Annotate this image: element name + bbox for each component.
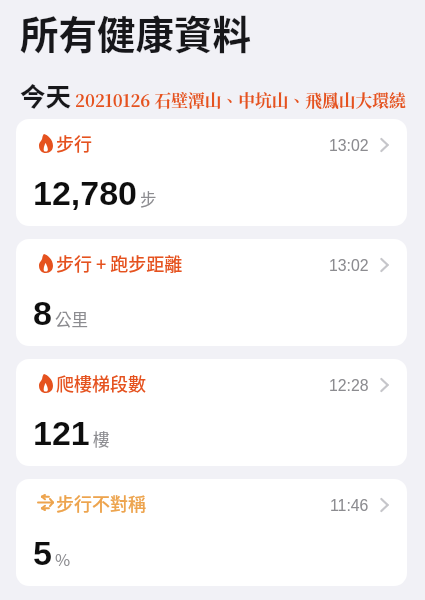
staticText: 20210126 石壁潭山、中坑山、飛鳳山大環繞 — [75, 88, 406, 112]
staticText: 8 — [33, 294, 52, 332]
staticText: 12:28 — [329, 377, 369, 395]
staticText: 樓 — [93, 427, 110, 451]
staticText: 公里 — [55, 307, 88, 331]
staticText: 12,780 — [33, 174, 137, 212]
staticText: 5 — [33, 534, 52, 572]
button[interactable]: 步行 — [16, 119, 407, 226]
button[interactable]: 爬樓梯段數 — [16, 359, 407, 466]
staticText: 121 — [33, 414, 90, 452]
button[interactable]: 步行不對稱 — [16, 479, 407, 586]
other: Show details — [380, 378, 389, 392]
staticText: 步行不對稱 — [56, 490, 146, 516]
staticText: 11:46 — [330, 497, 369, 515]
staticText: 步行 + 跑步距離 — [56, 250, 183, 276]
other: Show details — [380, 498, 389, 512]
staticText: 步 — [140, 187, 157, 211]
staticText: 13:02 — [329, 257, 369, 275]
other: Show details — [380, 258, 389, 272]
button[interactable]: 步行 + 跑步距離 — [16, 239, 407, 346]
staticText: 13:02 — [329, 137, 369, 155]
staticText: 爬樓梯段數 — [56, 370, 146, 396]
staticText: 步行 — [56, 130, 92, 156]
staticText: % — [55, 547, 71, 571]
staticText: 所有健康資料 — [20, 4, 252, 60]
other: Show details — [380, 138, 389, 152]
staticText: 今天 — [20, 76, 72, 113]
